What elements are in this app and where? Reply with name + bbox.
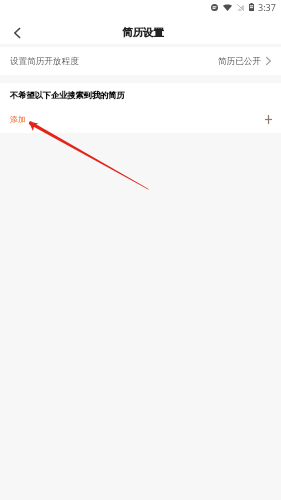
staticText: 添加 bbox=[10, 114, 26, 124]
staticText: 简历已公开 bbox=[218, 56, 261, 67]
staticText: 简历设置 bbox=[122, 26, 164, 39]
button[interactable]: Add company bbox=[262, 113, 274, 125]
button[interactable]: 添加 bbox=[0, 107, 281, 133]
button[interactable]: Back bbox=[0, 18, 34, 44]
staticText: 3:37 bbox=[258, 1, 276, 13]
staticText: 设置简历开放程度 bbox=[10, 56, 79, 67]
button[interactable]: 设置简历开放程度 bbox=[0, 47, 281, 75]
staticText: 不希望以下企业搜索到我的简历 bbox=[10, 90, 125, 100]
